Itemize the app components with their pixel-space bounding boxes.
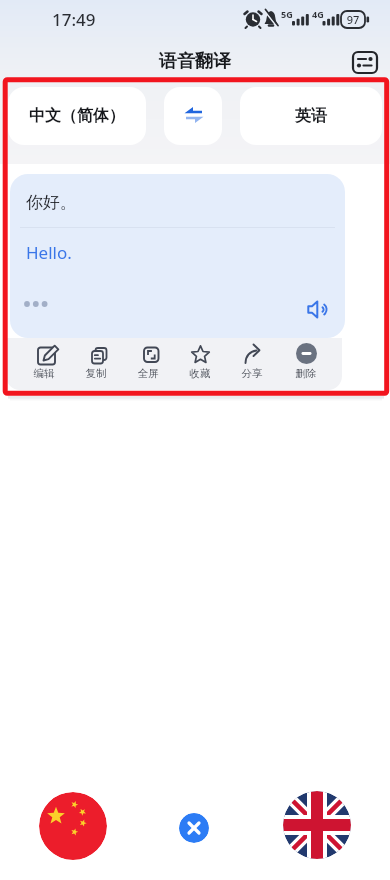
staticText: 分享	[228, 367, 276, 380]
staticText: 中文（简体）	[29, 106, 125, 126]
button[interactable]	[10, 174, 345, 338]
staticText: 收藏	[176, 367, 224, 380]
button[interactable]	[176, 340, 224, 388]
button[interactable]	[72, 340, 120, 388]
button[interactable]	[124, 340, 172, 388]
staticText: 97	[341, 12, 365, 27]
staticText: 17:49	[52, 8, 96, 31]
button[interactable]	[350, 50, 380, 76]
staticText: 复制	[72, 367, 120, 380]
button[interactable]	[179, 813, 209, 843]
staticText: 编辑	[20, 367, 68, 380]
button[interactable]: 中文（简体）	[8, 87, 146, 145]
staticText: Hello.	[26, 241, 72, 264]
button[interactable]: 英语	[240, 87, 382, 145]
button[interactable]	[283, 791, 351, 859]
staticText: 5G	[281, 8, 293, 20]
staticText: 删除	[282, 367, 330, 380]
button[interactable]	[164, 87, 222, 145]
button[interactable]	[20, 340, 68, 388]
staticText: 全屏	[124, 367, 172, 380]
button[interactable]	[228, 340, 276, 388]
button[interactable]	[39, 792, 107, 860]
staticText: 英语	[295, 106, 327, 126]
staticText: 语音翻译	[0, 50, 390, 73]
button[interactable]	[282, 340, 330, 388]
staticText: 你好。	[26, 192, 77, 213]
staticText: 4G	[312, 8, 324, 20]
